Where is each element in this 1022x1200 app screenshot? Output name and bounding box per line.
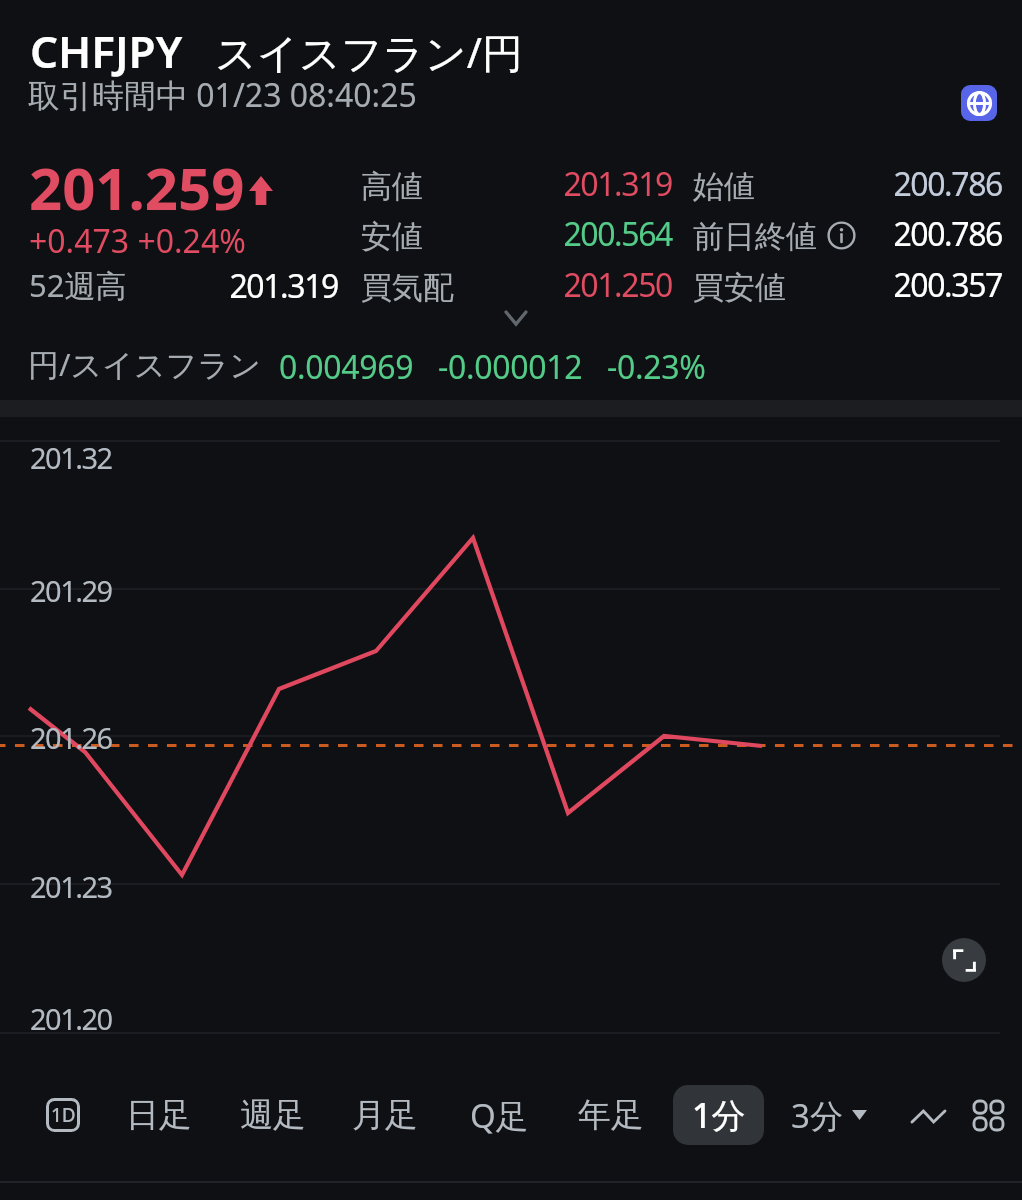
staticText: 200.786 xyxy=(702,212,1002,256)
staticText: 年足 xyxy=(578,1094,644,1136)
staticText: CHFJPY xyxy=(30,21,183,81)
staticText: 200.786 xyxy=(702,162,1002,206)
button[interactable]: 3分 xyxy=(791,1085,867,1145)
staticText: 安値 xyxy=(361,217,423,256)
button[interactable]: 年足 xyxy=(555,1085,667,1145)
staticText: 買気配 xyxy=(361,268,454,307)
staticText: 高値 xyxy=(361,167,423,206)
staticText: 200.357 xyxy=(702,263,1002,307)
staticText: 1D xyxy=(51,1102,76,1128)
staticText: スイスフラン/円 xyxy=(215,24,524,80)
staticText: 取引時間中 01/23 08:40:25 xyxy=(28,73,417,117)
staticText: 201.20 xyxy=(30,999,112,1038)
button[interactable]: 月足 xyxy=(329,1085,441,1145)
staticText: -0.000012 xyxy=(438,345,583,389)
staticText: 週足 xyxy=(240,1094,306,1136)
staticText: 201.250 xyxy=(372,263,672,307)
staticText: 月足 xyxy=(352,1094,418,1136)
staticText: 1分 xyxy=(692,1092,746,1138)
button[interactable]: Indicators xyxy=(967,1094,1010,1137)
button[interactable]: One day xyxy=(46,1098,80,1132)
staticText: 3分 xyxy=(791,1093,843,1138)
button[interactable]: 週足 xyxy=(217,1085,329,1145)
staticText: 201.26 xyxy=(30,718,112,757)
button[interactable]: Line chart type xyxy=(907,1092,950,1140)
staticText: 201.23 xyxy=(30,867,112,906)
staticText: +0.473 +0.24% xyxy=(29,219,246,263)
button[interactable]: Fullscreen chart xyxy=(942,938,986,982)
staticText: 201.319 xyxy=(38,264,338,308)
button[interactable]: Open website xyxy=(961,85,997,121)
button[interactable]: Q足 xyxy=(443,1085,555,1145)
button[interactable]: 日足 xyxy=(103,1085,215,1145)
staticText: 52週高 xyxy=(29,264,127,306)
staticText: 買安値 xyxy=(693,268,786,307)
staticText: 前日終値 xyxy=(693,217,817,256)
staticText: 0.004969 xyxy=(279,345,414,389)
staticText: 始値 xyxy=(693,167,755,206)
staticText: 日足 xyxy=(126,1094,192,1136)
staticText: 201.29 xyxy=(30,571,112,610)
staticText: 201.319 xyxy=(372,162,672,206)
staticText: Q足 xyxy=(470,1093,529,1138)
staticText: 円/スイスフラン xyxy=(28,343,261,385)
staticText: 200.564 xyxy=(372,212,672,256)
staticText: -0.23% xyxy=(607,345,706,389)
staticText: 201.259 xyxy=(29,148,245,227)
staticText: 201.32 xyxy=(30,438,112,477)
button[interactable]: 1分 xyxy=(673,1085,764,1145)
